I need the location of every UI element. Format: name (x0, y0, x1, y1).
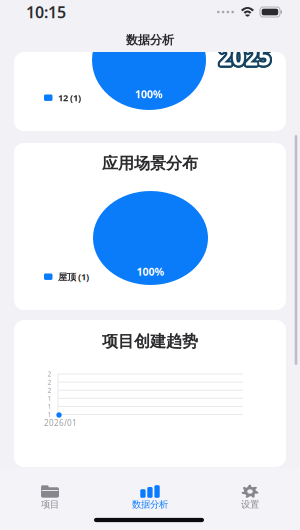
staticText: 2025 (217, 42, 269, 72)
button[interactable]: 数据分析 (100, 472, 200, 518)
staticText: 2025 (220, 40, 272, 70)
staticText: 2025 (219, 43, 271, 73)
staticText: 2025 (218, 44, 270, 74)
staticText: 2025 (220, 42, 272, 73)
staticText: 10:15 (26, 1, 66, 23)
staticText: 应用场景分布 (102, 154, 198, 173)
staticText: 2 (47, 386, 51, 395)
staticText: 2025 (221, 43, 273, 73)
staticText: 2025 (220, 43, 272, 73)
staticText: 2025 (217, 40, 269, 70)
staticText: 2025 (219, 41, 271, 71)
staticText: 2025 (221, 41, 273, 71)
staticText: 100% (135, 87, 163, 101)
staticText: 屋顶 (1) (58, 270, 89, 283)
staticText: 数据分析 (126, 33, 174, 47)
staticText: 2025 (220, 42, 272, 72)
staticText: 2025 (219, 43, 271, 73)
staticText: 2026/01 (44, 418, 77, 428)
button[interactable]: 设置 (200, 472, 300, 518)
staticText: 2025 (218, 41, 270, 71)
staticText: 2025 (220, 41, 272, 71)
button[interactable]: 项目 (0, 472, 100, 518)
staticText: 2025 (221, 42, 273, 72)
staticText: 设置 (241, 499, 259, 510)
staticText: 1 (47, 394, 51, 403)
staticText: 项目 (41, 499, 59, 510)
staticText: 12 (1) (58, 91, 81, 104)
staticText: 100% (136, 265, 164, 279)
staticText: 1 (47, 410, 51, 419)
staticText: 1 (47, 402, 51, 411)
staticText: 2025 (219, 40, 271, 70)
staticText: 项目创建趋势 (102, 332, 198, 351)
staticText: 2025 (219, 43, 271, 73)
staticText: 2025 (220, 42, 272, 72)
staticText: 2 (47, 370, 51, 378)
staticText: 2025 (218, 42, 270, 72)
staticText: 2025 (218, 41, 270, 71)
staticText: 2025 (219, 41, 271, 71)
staticText: 2025 (220, 41, 272, 71)
staticText: 2025 (219, 44, 271, 74)
staticText: 2025 (217, 41, 269, 71)
staticText: 2025 (217, 43, 269, 73)
staticText: 2025 (220, 44, 272, 74)
staticText: 2025 (219, 42, 271, 72)
staticText: 2025 (218, 42, 270, 72)
staticText: 数据分析 (132, 499, 168, 510)
staticText: 2025 (219, 41, 271, 71)
staticText: 2 (47, 378, 51, 387)
staticText: 2025 (218, 42, 270, 73)
staticText: 2025 (218, 40, 270, 70)
staticText: 2025 (220, 40, 272, 70)
staticText: 2025 (217, 43, 269, 73)
